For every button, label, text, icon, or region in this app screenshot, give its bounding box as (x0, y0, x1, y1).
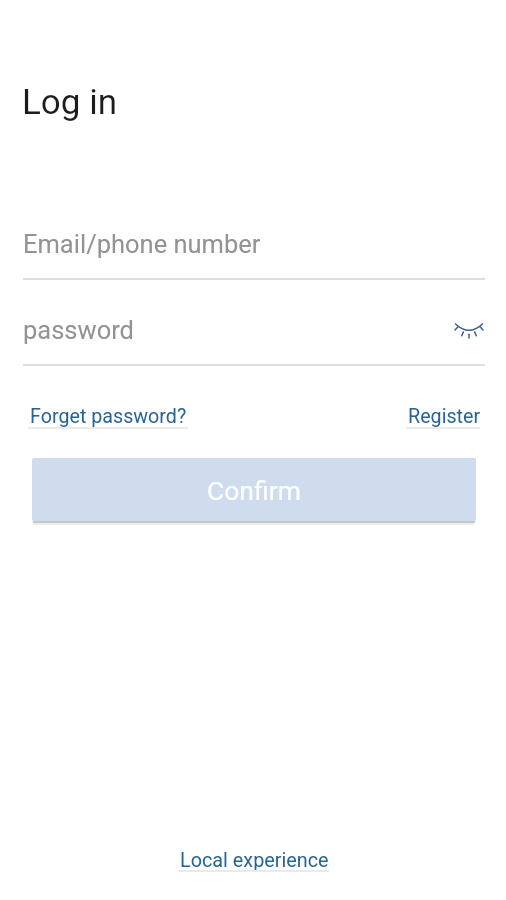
button[interactable]: Confirm (32, 458, 476, 521)
button[interactable]: Forget password? (28, 403, 188, 433)
button[interactable]: Show password (441, 314, 497, 358)
staticText: Confirm (207, 475, 301, 506)
staticText: Local experience (180, 849, 329, 872)
button[interactable]: password (23, 315, 135, 345)
button[interactable]: Register (406, 403, 480, 433)
button[interactable]: Local experience (176, 847, 330, 875)
staticText: Register (408, 405, 481, 428)
staticText: Forget password? (30, 405, 187, 428)
staticText: Email/phone number (23, 229, 261, 259)
staticText: Log in (22, 82, 117, 123)
button[interactable]: Email/phone number (0, 228, 506, 280)
